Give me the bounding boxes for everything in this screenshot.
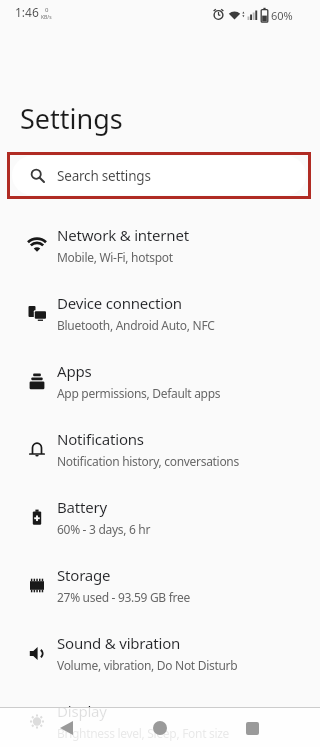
staticText: App permissions, Default apps: [57, 385, 221, 401]
button[interactable]: Battery: [0, 483, 320, 551]
staticText: Notification history, conversations: [57, 453, 239, 469]
staticText: 0: [45, 6, 49, 14]
staticText: Device connection: [57, 293, 182, 313]
staticText: Notifications: [57, 429, 144, 449]
staticText: 60%: [271, 8, 293, 23]
staticText: Sound & vibration: [57, 633, 181, 653]
button[interactable]: [130, 709, 190, 747]
button[interactable]: [222, 709, 282, 747]
staticText: Volume, vibration, Do Not Disturb: [57, 657, 238, 673]
button[interactable]: Storage: [0, 551, 320, 619]
staticText: Search settings: [57, 167, 151, 185]
button[interactable]: Sound & vibration: [0, 619, 320, 687]
staticText: Display: [57, 701, 107, 721]
staticText: 60% - 3 days, 6 hr: [57, 521, 151, 537]
staticText: Settings: [20, 100, 123, 137]
staticText: Network & internet: [57, 225, 189, 245]
button[interactable]: Notifications: [0, 415, 320, 483]
staticText: Storage: [57, 565, 111, 585]
staticText: Battery: [57, 497, 107, 517]
staticText: Bluetooth, Android Auto, NFC: [57, 317, 215, 333]
button[interactable]: Search settings: [12, 156, 306, 195]
button[interactable]: Display: [0, 687, 320, 747]
staticText: Brightness level, Sleep, Font size: [57, 725, 230, 741]
staticText: 1:46: [15, 4, 39, 20]
staticText: Apps: [57, 361, 92, 381]
button[interactable]: [37, 709, 97, 747]
staticText: KB/s: [41, 14, 52, 21]
staticText: 27% used - 93.59 GB free: [57, 589, 190, 605]
button[interactable]: Device connection: [0, 279, 320, 347]
button[interactable]: Network & internet: [0, 211, 320, 279]
button[interactable]: Apps: [0, 347, 320, 415]
staticText: Mobile, Wi-Fi, hotspot: [57, 249, 173, 265]
